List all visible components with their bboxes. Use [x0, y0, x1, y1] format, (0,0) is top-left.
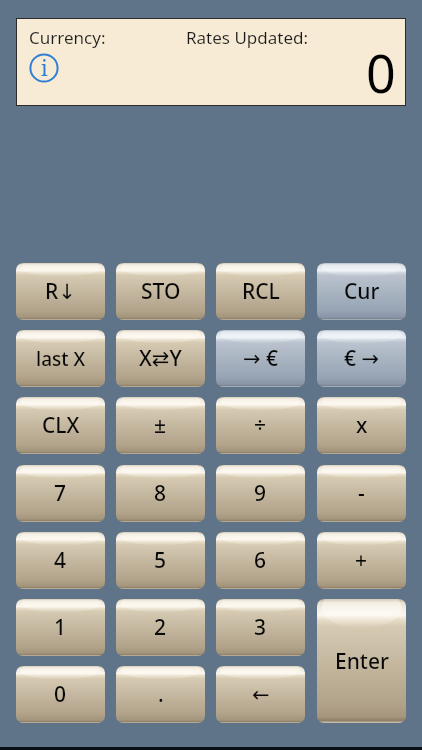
- staticText: 0: [54, 680, 67, 709]
- staticText: Rates Updated:: [186, 26, 309, 49]
- button[interactable]: ÷: [216, 397, 305, 454]
- staticText: R↓: [45, 277, 76, 306]
- button[interactable]: R↓: [16, 263, 105, 320]
- button[interactable]: +: [317, 532, 406, 589]
- button[interactable]: Enter: [317, 599, 406, 723]
- staticText: 6: [254, 546, 267, 575]
- button[interactable]: 4: [16, 532, 105, 589]
- staticText: Currency:: [29, 26, 106, 49]
- button[interactable]: 6: [216, 532, 305, 589]
- button[interactable]: 0: [16, 666, 105, 723]
- staticText: RCL: [242, 277, 280, 306]
- staticText: → €: [243, 344, 279, 373]
- button[interactable]: 8: [116, 465, 205, 522]
- button[interactable]: X⇄Y: [116, 330, 205, 387]
- staticText: Cur: [344, 277, 380, 306]
- button[interactable]: CLX: [16, 397, 105, 454]
- button[interactable]: 9: [216, 465, 305, 522]
- staticText: 4: [54, 546, 67, 575]
- staticText: 5: [154, 546, 167, 575]
- button[interactable]: RCL: [216, 263, 305, 320]
- button[interactable]: Info: [29, 53, 59, 83]
- staticText: ±: [154, 411, 167, 440]
- staticText: X⇄Y: [139, 344, 182, 373]
- staticText: 0: [366, 37, 396, 108]
- staticText: 1: [54, 613, 67, 642]
- button[interactable]: 3: [216, 599, 305, 656]
- staticText: i: [41, 54, 48, 83]
- button[interactable]: 1: [16, 599, 105, 656]
- button[interactable]: ←: [216, 666, 305, 723]
- button[interactable]: STO: [116, 263, 205, 320]
- button[interactable]: € →: [317, 330, 406, 387]
- button[interactable]: 7: [16, 465, 105, 522]
- button[interactable]: → €: [216, 330, 305, 387]
- staticText: 7: [54, 479, 67, 508]
- button[interactable]: Cur: [317, 263, 406, 320]
- staticText: 3: [254, 613, 267, 642]
- button[interactable]: .: [116, 666, 205, 723]
- staticText: Enter: [335, 647, 389, 676]
- staticText: 2: [154, 613, 167, 642]
- staticText: last X: [36, 346, 86, 372]
- staticText: +: [355, 546, 368, 575]
- button[interactable]: -: [317, 465, 406, 522]
- staticText: € →: [344, 344, 380, 373]
- staticText: ←: [252, 683, 270, 707]
- staticText: 9: [254, 479, 267, 508]
- staticText: -: [358, 479, 365, 508]
- button[interactable]: x: [317, 397, 406, 454]
- button[interactable]: 2: [116, 599, 205, 656]
- staticText: 8: [154, 479, 167, 508]
- staticText: .: [158, 680, 164, 709]
- button[interactable]: last X: [16, 330, 105, 387]
- button[interactable]: ±: [116, 397, 205, 454]
- staticText: ÷: [254, 411, 267, 440]
- staticText: STO: [141, 277, 181, 306]
- staticText: CLX: [42, 411, 80, 440]
- staticText: x: [356, 411, 368, 440]
- button[interactable]: 5: [116, 532, 205, 589]
